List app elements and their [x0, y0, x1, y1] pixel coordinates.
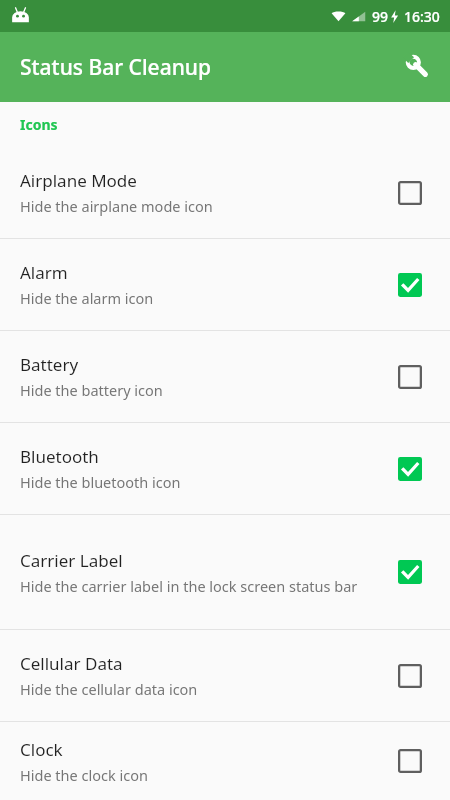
staticText: Clock [20, 738, 63, 761]
staticText: Hide the bluetooth icon [20, 472, 181, 492]
button[interactable]: Checked [388, 550, 432, 594]
button[interactable]: Carrier Label [0, 515, 450, 629]
staticText: Hide the cellular data icon [20, 679, 198, 699]
staticText: 16:30 [404, 7, 440, 26]
staticText: Bluetooth [20, 445, 99, 468]
staticText: Airplane Mode [20, 169, 137, 192]
button[interactable]: Unchecked [388, 171, 432, 215]
staticText: Hide the alarm icon [20, 288, 154, 308]
staticText: 99 [372, 7, 389, 26]
button[interactable]: Settings [394, 43, 442, 91]
button[interactable]: Airplane Mode [0, 147, 450, 238]
staticText: Carrier Label [20, 549, 123, 572]
staticText: Hide the carrier label in the lock scree… [20, 576, 358, 596]
button[interactable]: Unchecked [388, 355, 432, 399]
staticText: Hide the clock icon [20, 765, 148, 785]
button[interactable]: Checked [388, 263, 432, 307]
button[interactable]: Unchecked [388, 654, 432, 698]
button[interactable]: Battery [0, 331, 450, 422]
staticText: Alarm [20, 261, 68, 284]
staticText: Hide the battery icon [20, 380, 163, 400]
button[interactable]: Checked [388, 447, 432, 491]
staticText: Status Bar Cleanup [20, 53, 211, 82]
button[interactable]: Unchecked [388, 739, 432, 783]
button[interactable]: Clock [0, 722, 450, 800]
button[interactable]: Alarm [0, 239, 450, 330]
staticText: Battery [20, 353, 79, 376]
button[interactable]: Cellular Data [0, 630, 450, 721]
staticText: Cellular Data [20, 652, 123, 675]
button[interactable]: Bluetooth [0, 423, 450, 514]
staticText: Icons [20, 115, 58, 134]
staticText: Hide the airplane mode icon [20, 196, 213, 216]
